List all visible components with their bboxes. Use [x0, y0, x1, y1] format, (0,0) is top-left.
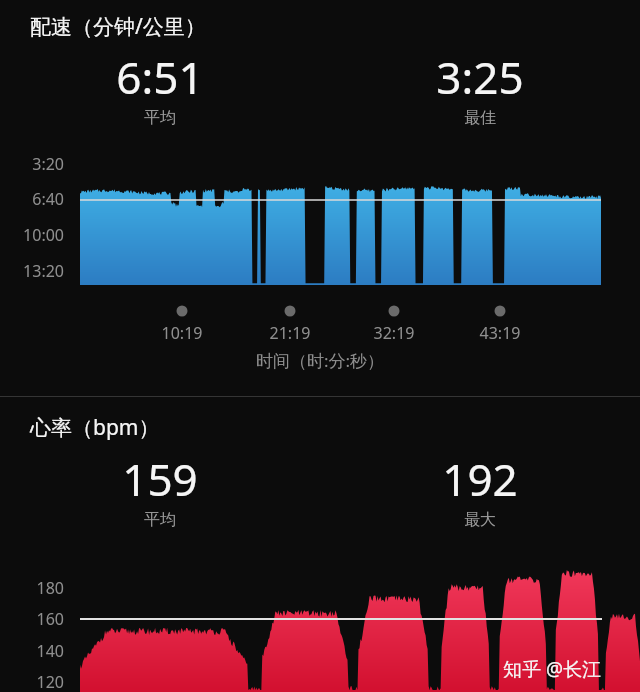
- staticText: 平均: [144, 510, 176, 530]
- staticText: 3:20: [0, 153, 64, 175]
- button[interactable]: 192: [320, 449, 640, 530]
- button[interactable]: 159: [0, 449, 320, 530]
- staticText: 6:40: [0, 188, 64, 210]
- staticText: 心率（bpm）: [30, 413, 160, 442]
- staticText: 140: [0, 640, 64, 662]
- staticText: 10:00: [0, 224, 64, 246]
- staticText: 6:51: [116, 47, 204, 107]
- staticText: 最大: [464, 510, 496, 530]
- staticText: 180: [0, 577, 64, 599]
- staticText: 21:19: [250, 322, 330, 344]
- staticText: 10:19: [142, 322, 222, 344]
- button[interactable]: 6:51: [0, 47, 320, 128]
- staticText: 3:25: [436, 47, 524, 107]
- staticText: 时间（时:分:秒）: [0, 349, 640, 372]
- staticText: 平均: [144, 108, 176, 128]
- staticText: 13:20: [0, 260, 64, 282]
- staticText: 32:19: [354, 322, 434, 344]
- staticText: 160: [0, 608, 64, 630]
- staticText: 最佳: [464, 108, 496, 128]
- staticText: 192: [442, 449, 518, 509]
- staticText: 知乎 @长江: [503, 656, 602, 682]
- staticText: 配速（分钟/公里）: [30, 12, 206, 41]
- staticText: 43:19: [460, 322, 540, 344]
- staticText: 159: [122, 449, 198, 509]
- button[interactable]: 3:25: [320, 47, 640, 128]
- staticText: 120: [0, 671, 64, 692]
